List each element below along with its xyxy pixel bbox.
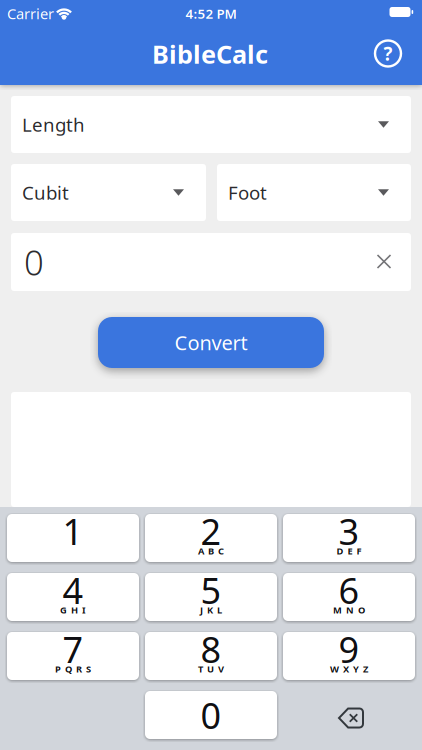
staticText: ? [383, 41, 392, 66]
staticText: M N O [333, 604, 365, 616]
staticText: Length [22, 112, 85, 137]
button[interactable]: 5 [145, 573, 277, 621]
button[interactable]: 6 [283, 573, 415, 621]
staticText: 4:52 PM [185, 5, 236, 22]
button[interactable]: Help [371, 36, 405, 70]
staticText: Carrier [7, 4, 54, 23]
button[interactable]: Delete [329, 698, 373, 738]
button[interactable]: Clear text [369, 246, 399, 276]
button[interactable]: 0 [145, 691, 277, 739]
button[interactable]: 4 [7, 573, 139, 621]
button[interactable]: Length [11, 96, 411, 153]
staticText: P Q R S [55, 663, 91, 675]
staticText: Foot [228, 180, 267, 205]
staticText: 7 [62, 625, 83, 673]
staticText: D E F [336, 545, 361, 557]
staticText: J K L [200, 604, 222, 616]
staticText: 5 [200, 566, 221, 614]
button[interactable]: 3 [283, 514, 415, 562]
staticText: W X Y Z [330, 663, 368, 675]
staticText: 0 [200, 691, 221, 739]
staticText: T U V [198, 663, 224, 675]
staticText: 0 [24, 239, 44, 285]
staticText: Convert [174, 329, 247, 356]
staticText: 6 [338, 566, 359, 614]
staticText: Cubit [22, 180, 69, 205]
staticText: 8 [200, 625, 221, 673]
staticText: 2 [200, 507, 221, 555]
staticText: 1 [62, 507, 83, 555]
staticText: G H I [60, 604, 86, 616]
staticText: 9 [338, 625, 359, 673]
button[interactable]: 1 [7, 514, 139, 562]
button[interactable]: 7 [7, 632, 139, 680]
button[interactable]: 8 [145, 632, 277, 680]
staticText: 4 [62, 566, 83, 614]
button[interactable]: Convert [98, 317, 324, 368]
staticText: A B C [198, 545, 224, 557]
staticText: BibleCalc [152, 37, 268, 71]
button[interactable]: Cubit [11, 164, 206, 221]
button[interactable]: 9 [283, 632, 415, 680]
button[interactable]: Foot [217, 164, 411, 221]
button[interactable]: 2 [145, 514, 277, 562]
staticText: 3 [338, 507, 359, 555]
